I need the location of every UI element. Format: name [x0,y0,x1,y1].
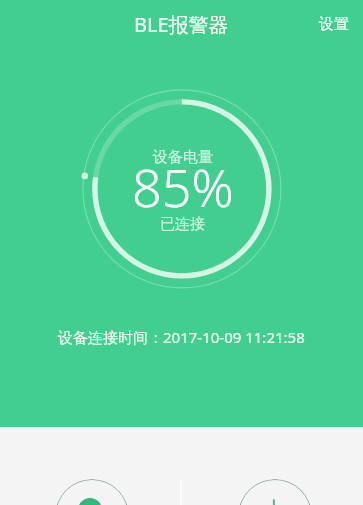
staticText: BLE报警器 [134,11,229,38]
staticText: 设置 [319,15,349,34]
staticText: 已连接 [160,215,205,234]
button[interactable]: 报警 [0,427,181,505]
staticText: 85% [132,151,234,222]
staticText: 设备电量 [153,148,213,167]
staticText: 设备连接时间：2017-10-09 11:21:58 [58,327,305,347]
button[interactable]: 设置 [305,3,363,46]
button[interactable]: 开关 [181,427,363,505]
